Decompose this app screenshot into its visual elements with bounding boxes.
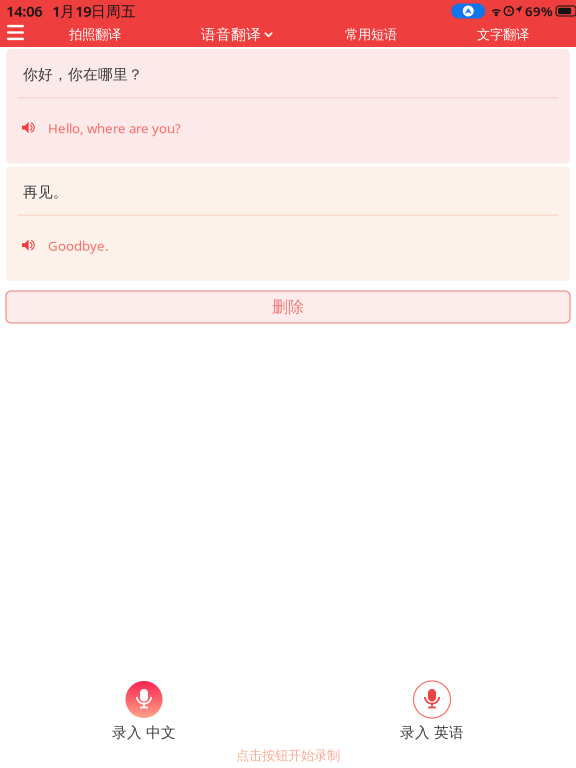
staticText: 再见。 xyxy=(23,183,68,201)
staticText: 拍照翻译 xyxy=(69,26,121,43)
button[interactable]: 录入 英语 xyxy=(367,681,497,741)
staticText: 1月19日周五 xyxy=(52,1,136,21)
staticText: 语音翻译 xyxy=(201,25,261,43)
button[interactable]: Speak Hello, where are you? xyxy=(6,116,48,139)
button[interactable]: Menu xyxy=(0,20,31,45)
button[interactable]: 录入 中文 xyxy=(79,681,209,741)
staticText: 你好，你在哪里？ xyxy=(23,65,143,83)
button[interactable]: Speak Goodbye. xyxy=(6,234,48,257)
button[interactable]: 删除 xyxy=(6,291,570,323)
staticText: 69% xyxy=(525,2,553,20)
staticText: Hello, where are you? xyxy=(48,119,181,137)
button[interactable]: 文字翻译 xyxy=(457,22,549,47)
staticText: 录入 中文 xyxy=(112,723,176,741)
button[interactable]: 常用短语 xyxy=(325,22,417,47)
staticText: 录入 英语 xyxy=(400,723,464,741)
staticText: 文字翻译 xyxy=(477,26,529,43)
staticText: Goodbye. xyxy=(48,237,109,254)
staticText: 常用短语 xyxy=(345,26,397,43)
staticText: 14:06 xyxy=(6,1,42,21)
button[interactable]: 语音翻译 xyxy=(191,22,283,47)
staticText: 点击按钮开始录制 xyxy=(236,747,340,764)
staticText: 删除 xyxy=(272,297,304,317)
button[interactable]: 拍照翻译 xyxy=(49,22,141,47)
